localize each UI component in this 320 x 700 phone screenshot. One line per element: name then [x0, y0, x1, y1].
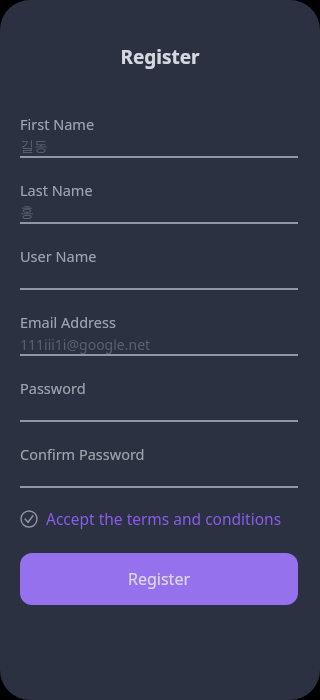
staticText: Accept the terms and conditions: [46, 508, 282, 529]
button[interactable]: Last Name: [20, 180, 298, 224]
staticText: User Name: [20, 246, 97, 266]
staticText: Last Name: [20, 180, 93, 200]
staticText: First Name: [20, 114, 95, 134]
staticText: Register: [0, 44, 320, 70]
staticText: Confirm Password: [20, 444, 145, 464]
button[interactable]: First Name: [20, 114, 298, 158]
staticText: Email Address: [20, 312, 116, 332]
button[interactable]: Register: [20, 553, 298, 605]
staticText: 홍: [20, 204, 34, 222]
staticText: 111iii1i@google.net: [20, 335, 151, 354]
button[interactable]: Password: [20, 378, 298, 422]
staticText: Password: [20, 378, 86, 398]
staticText: 길동: [20, 138, 48, 156]
button[interactable]: Accept the terms and conditions: [20, 508, 298, 529]
button[interactable]: Confirm Password: [20, 444, 298, 488]
staticText: Register: [128, 568, 191, 590]
button[interactable]: Email Address: [20, 312, 298, 356]
button[interactable]: User Name: [20, 246, 298, 290]
